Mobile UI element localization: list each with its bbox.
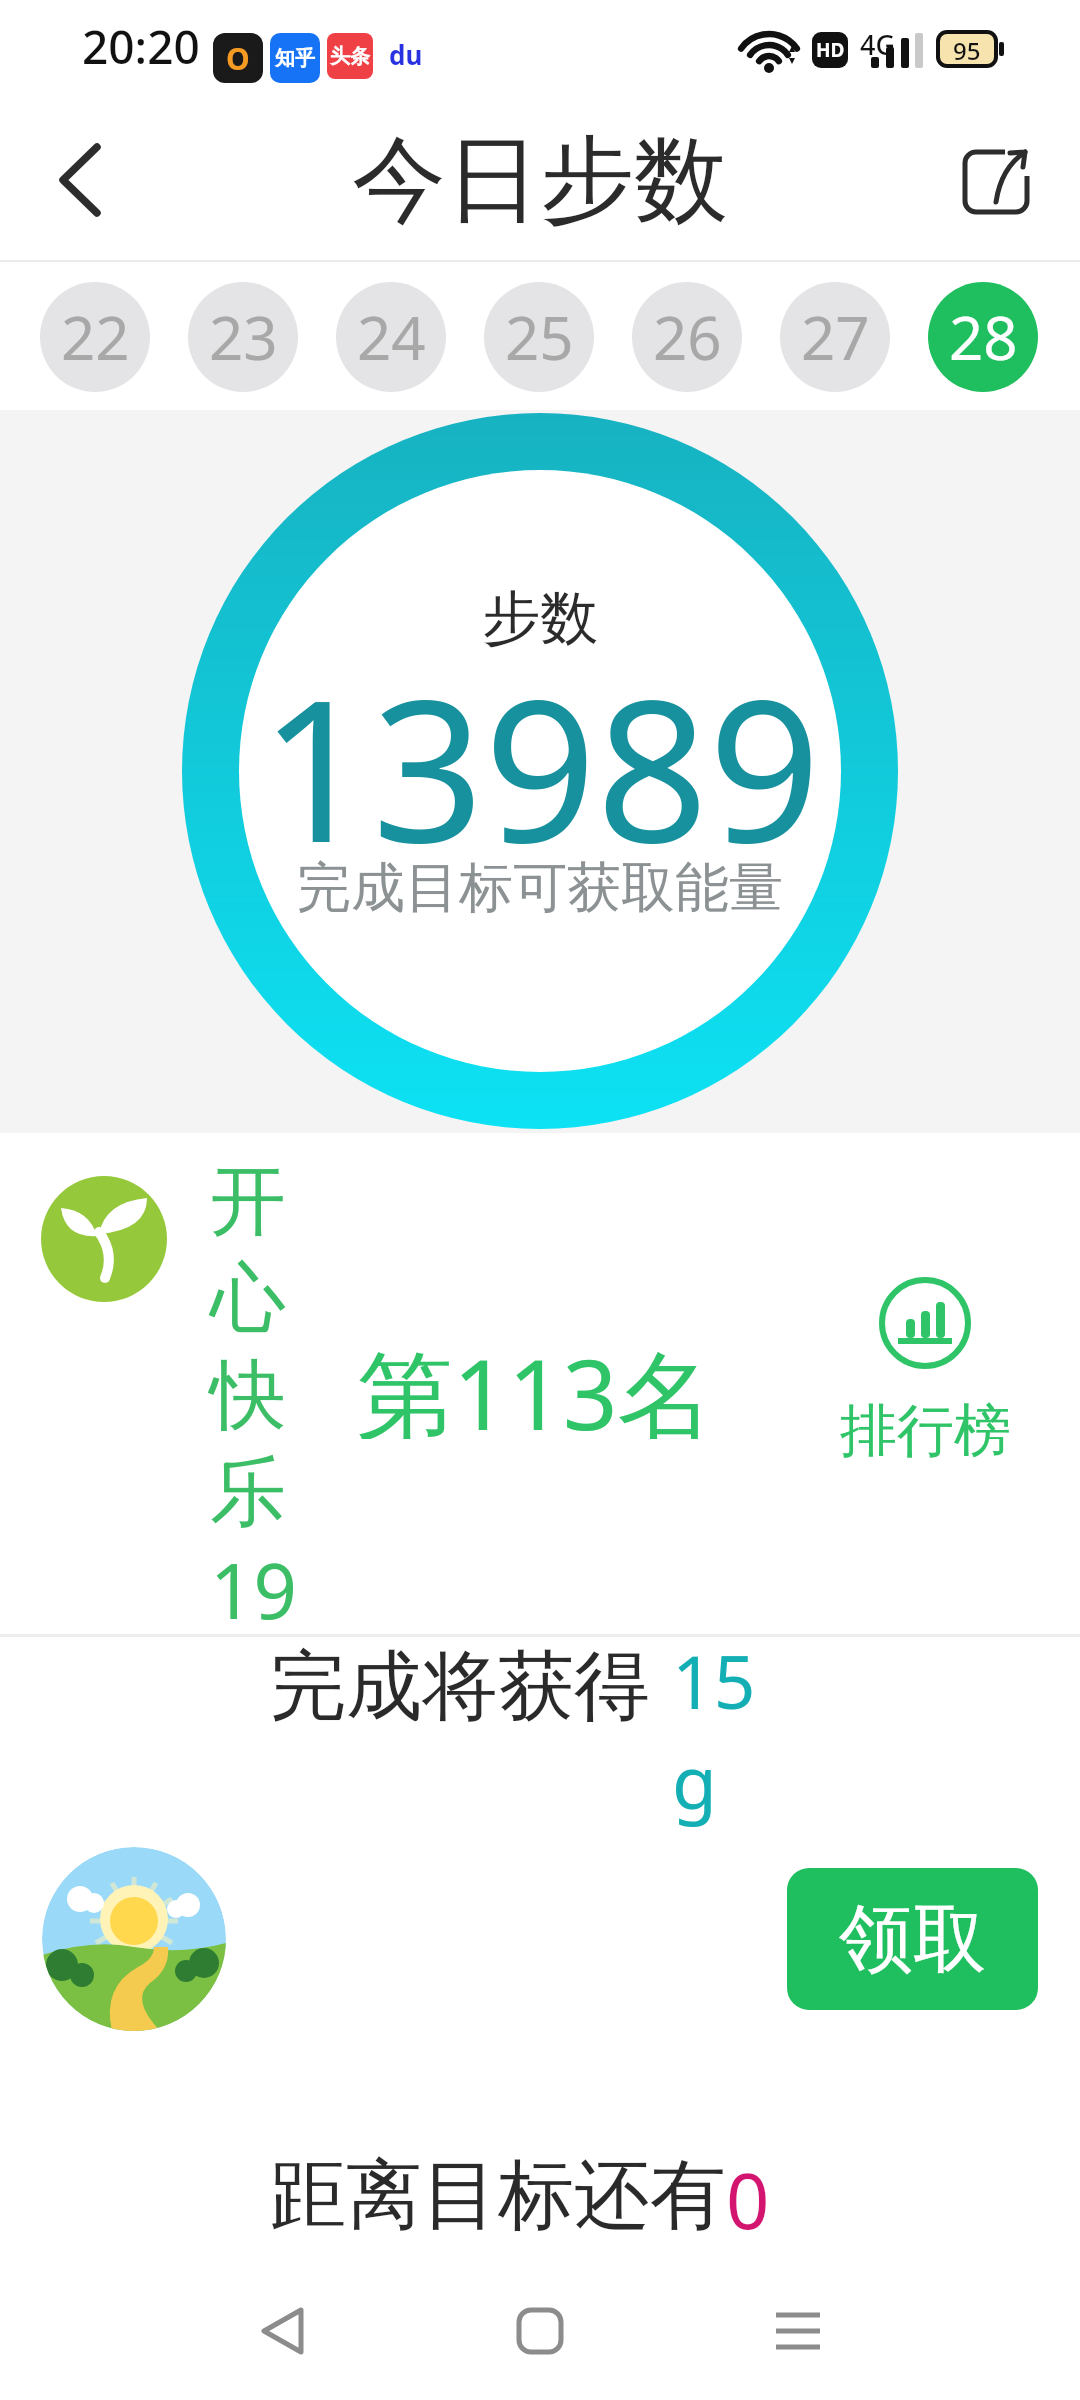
staticText: 28 [949, 296, 1018, 378]
staticText: 第113名 [357, 1327, 714, 1439]
staticText: 今日步数 [352, 121, 728, 239]
staticText: 距离目标还有 [270, 2148, 726, 2240]
button[interactable]: 26 [632, 282, 742, 392]
button[interactable] [728, 2276, 868, 2386]
staticText: 22 [61, 296, 130, 378]
button[interactable] [940, 125, 1052, 237]
button[interactable]: 22 [40, 282, 150, 392]
button[interactable]: 23 [188, 282, 298, 392]
staticText: 开心快乐19 [210, 1154, 304, 1641]
staticText: 15 g [672, 1631, 758, 1831]
staticText: 23 [209, 296, 278, 378]
button[interactable]: 排行榜 [800, 1270, 1050, 1470]
staticText: 完成将获得 [270, 1631, 670, 1723]
button[interactable]: 领取 [787, 1868, 1038, 2010]
staticText: 24 [357, 296, 426, 378]
button[interactable]: 28 [928, 282, 1038, 392]
staticText: 95 [953, 34, 981, 64]
staticText: 0 [726, 2148, 770, 2240]
staticText: 4G [860, 26, 896, 56]
button[interactable]: 27 [780, 282, 890, 392]
staticText: HD [816, 37, 845, 63]
staticText: 排行榜 [840, 1395, 1011, 1463]
staticText: du [389, 37, 423, 72]
button[interactable] [470, 2276, 610, 2386]
staticText: 25 [505, 296, 574, 378]
staticText: 步数 [482, 582, 598, 655]
button[interactable] [30, 130, 130, 230]
staticText: 27 [801, 296, 870, 378]
staticText: 完成目标可获取能量 [297, 854, 783, 922]
button[interactable] [42, 1847, 226, 2031]
staticText: 头条 [330, 44, 370, 69]
button[interactable]: 25 [484, 282, 594, 392]
staticText: 领取 [839, 1893, 987, 1986]
staticText: 20:20 [82, 15, 200, 78]
button[interactable] [212, 2276, 352, 2386]
button[interactable]: 24 [336, 282, 446, 392]
staticText: O [226, 38, 250, 79]
staticText: 知乎 [275, 46, 315, 71]
staticText: 26 [653, 296, 722, 378]
staticText: 13989 [260, 632, 821, 899]
